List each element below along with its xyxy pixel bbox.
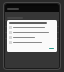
- button[interactable]: [5, 15, 59, 20]
- button[interactable]: Select option: [9, 31, 55, 34]
- button[interactable]: [5, 6, 59, 12]
- button[interactable]: [5, 33, 59, 38]
- button[interactable]: [5, 27, 59, 32]
- button[interactable]: Select option: [9, 36, 55, 39]
- button[interactable]: [5, 21, 59, 26]
- button[interactable]: Select option: [9, 26, 55, 29]
- button[interactable]: Select option: [9, 41, 55, 44]
- button[interactable]: Confirm: [48, 47, 55, 50]
